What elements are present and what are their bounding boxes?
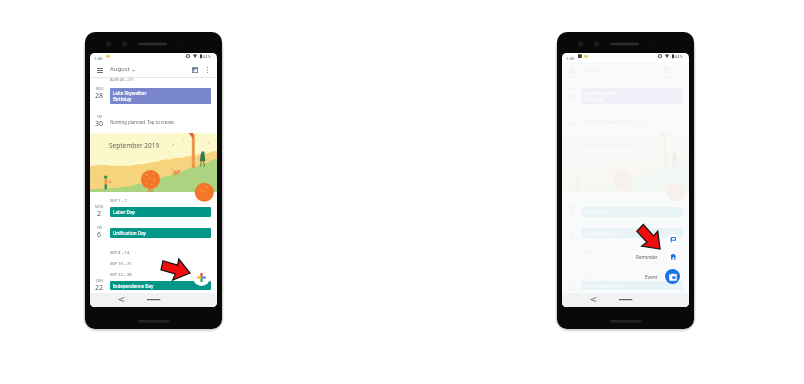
- staticText: 44%: [675, 54, 684, 60]
- button[interactable]: Luke Skywalker Birthday: [110, 88, 211, 104]
- staticText: SEP 22 – 28: [110, 272, 132, 278]
- staticText: Unification Day: [585, 230, 618, 236]
- staticText: Luke Skywalker Birthday: [585, 90, 619, 102]
- staticText: Independence Day: [585, 283, 626, 289]
- button[interactable]: [562, 62, 689, 293]
- staticText: Independence Day: [113, 283, 154, 289]
- button[interactable]: Open navigation menu: [94, 64, 106, 76]
- button[interactable]: September 2019: [562, 133, 689, 192]
- button[interactable]: Independence Day: [582, 281, 683, 290]
- staticText: 28: [95, 91, 104, 101]
- staticText: 44%: [203, 54, 212, 60]
- button[interactable]: More options: [201, 64, 213, 76]
- button[interactable]: September 2019: [90, 133, 217, 192]
- button[interactable]: Labor Day: [110, 207, 211, 217]
- button[interactable]: Unification Day: [110, 228, 211, 238]
- button[interactable]: Go to today: [661, 64, 673, 76]
- button[interactable]: Independence Day: [110, 281, 211, 290]
- button[interactable]: Nothing planned. Tap to create.: [110, 119, 175, 125]
- button[interactable]: Go to today: [189, 64, 201, 76]
- staticText: SEP 15 – 21: [110, 261, 132, 267]
- staticText: September 2019: [109, 141, 160, 150]
- staticText: 1:40: [94, 55, 103, 61]
- staticText: MON: [95, 204, 104, 209]
- staticText: SEP 1 – 7: [110, 198, 127, 204]
- staticText: 1:40: [566, 55, 575, 61]
- button[interactable]: Open navigation menu: [566, 64, 578, 76]
- button[interactable]: Event: [645, 274, 658, 280]
- staticText: WED: [96, 86, 104, 91]
- staticText: Luke Skywalker Birthday: [113, 90, 147, 102]
- staticText: 6: [97, 230, 102, 240]
- staticText: FRI: [97, 225, 103, 230]
- button[interactable]: Unification Day: [582, 228, 683, 238]
- staticText: Labor Day: [585, 209, 607, 215]
- staticText: 22: [95, 283, 104, 293]
- button[interactable]: Create new event: [193, 269, 210, 286]
- button[interactable]: Labor Day: [582, 207, 683, 217]
- button[interactable]: Reminder: [636, 254, 658, 260]
- staticText: August: [110, 65, 130, 73]
- staticText: SUN: [96, 278, 103, 283]
- button[interactable]: August: [110, 66, 135, 74]
- staticText: Labor Day: [113, 209, 135, 215]
- button[interactable]: Goal: [667, 234, 678, 245]
- staticText: 2: [97, 209, 102, 219]
- staticText: FRI: [97, 114, 103, 119]
- staticText: SEP 8 – 14: [110, 250, 130, 256]
- staticText: Unification Day: [113, 230, 146, 236]
- staticText: 30: [95, 119, 104, 129]
- button[interactable]: Event: [665, 269, 680, 284]
- staticText: AUG 25 – 31: [110, 77, 134, 83]
- button[interactable]: Reminder: [667, 251, 678, 262]
